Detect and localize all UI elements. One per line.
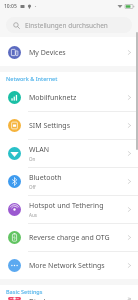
other: Open More Network Settings xyxy=(127,261,132,270)
staticText: 10:05 xyxy=(4,3,17,10)
staticText: SIM Settings xyxy=(29,121,71,131)
staticText: Basic Settings xyxy=(6,288,43,295)
button[interactable]: WLAN xyxy=(0,140,138,167)
staticText: Bluetooth xyxy=(29,173,62,183)
other: Open Reverse charge and OTG xyxy=(127,233,132,242)
staticText: Aus xyxy=(29,212,37,218)
other: Open Display xyxy=(127,297,132,300)
button[interactable]: Einstellungen durchsuchen xyxy=(6,17,132,33)
button[interactable]: Bluetooth xyxy=(0,168,138,195)
staticText: On xyxy=(29,156,36,162)
other: Open SIM Settings xyxy=(127,121,132,130)
staticText: Network & Internet xyxy=(6,75,58,82)
staticText: Display xyxy=(29,297,53,300)
button[interactable]: My Devices xyxy=(0,39,138,66)
staticText: Reverse charge and OTG xyxy=(29,233,110,243)
staticText: WLAN xyxy=(29,145,49,155)
other: Open WLAN xyxy=(127,149,132,158)
staticText: More Network Settings xyxy=(29,261,105,271)
staticText: Off xyxy=(29,184,36,190)
staticText: Einstellungen durchsuchen xyxy=(25,21,108,30)
button[interactable]: Hotspot und Tethering xyxy=(0,196,138,223)
other: Open Bluetooth xyxy=(127,177,132,186)
staticText: My Devices xyxy=(29,48,66,58)
staticText: Mobilfunknetz xyxy=(29,93,77,103)
button[interactable]: Display xyxy=(0,297,138,300)
other: Open Hotspot und Tethering xyxy=(127,205,132,214)
other: Open Mobilfunknetz xyxy=(127,93,132,102)
other: Open My Devices xyxy=(127,48,132,57)
button[interactable]: Mobilfunknetz xyxy=(0,84,138,111)
staticText: Hotspot und Tethering xyxy=(29,201,104,211)
button[interactable]: More Network Settings xyxy=(0,252,138,279)
button[interactable]: SIM Settings xyxy=(0,112,138,139)
button[interactable]: Reverse charge and OTG xyxy=(0,224,138,251)
